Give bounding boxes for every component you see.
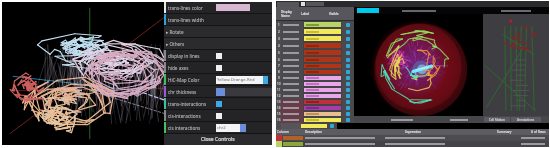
staticText: 6 xyxy=(278,58,280,62)
button[interactable]: trans-interactions xyxy=(164,98,272,109)
staticText: 15 xyxy=(277,112,281,116)
staticText: Cell Motion xyxy=(489,118,505,122)
button[interactable]: 2 xyxy=(276,28,354,35)
button[interactable]: 3 xyxy=(276,35,354,42)
staticText: Display Name xyxy=(281,10,301,18)
staticText: Yellow-Orange-Red xyxy=(217,77,263,83)
button[interactable]: display in lines xyxy=(164,50,272,61)
button[interactable]: 8 xyxy=(276,69,354,75)
button[interactable]: ▸ Rotate xyxy=(164,26,272,37)
staticText: ▸ Rotate xyxy=(166,29,184,35)
staticText: Summary xyxy=(497,130,512,134)
staticText: Label xyxy=(301,12,329,16)
button[interactable]: 14 xyxy=(276,105,354,111)
button[interactable]: 11 xyxy=(276,87,354,93)
staticText: trans-lines width xyxy=(168,17,214,23)
button[interactable]: Close Controls xyxy=(164,134,272,145)
button[interactable]: hide axes xyxy=(164,62,272,73)
button[interactable]: trans-lines color xyxy=(164,2,272,13)
staticText: 1 xyxy=(278,23,280,27)
button[interactable]: Toggle visibility xyxy=(346,64,350,68)
button[interactable]: Toggle visibility xyxy=(346,100,350,104)
button[interactable]: 10 xyxy=(276,81,354,87)
button[interactable]: Toggle visibility xyxy=(346,118,350,122)
staticText: Annotations xyxy=(517,118,535,122)
staticText: Column xyxy=(277,130,289,134)
button[interactable]: 15 xyxy=(276,111,354,117)
button[interactable]: Toggle visibility xyxy=(346,112,350,116)
staticText: 10 xyxy=(277,82,281,86)
button[interactable]: 5 xyxy=(276,49,354,56)
button[interactable]: Toggle visibility xyxy=(346,82,350,86)
staticText: trans-interactions xyxy=(168,101,214,107)
staticText: 2 xyxy=(278,30,280,34)
button[interactable]: Toggle visibility xyxy=(346,23,350,27)
staticText: trans-lines color xyxy=(168,5,214,11)
staticText: 4 xyxy=(278,44,280,48)
staticText: 9 xyxy=(278,76,280,80)
button[interactable]: 7 xyxy=(276,63,354,69)
button[interactable]: Toggle visibility xyxy=(346,58,350,62)
button[interactable]: cis interactions xyxy=(164,122,272,133)
button[interactable]: Toggle visibility xyxy=(346,37,350,41)
button[interactable]: 6 xyxy=(276,56,354,63)
staticText: Description xyxy=(305,130,323,134)
button[interactable]: Toggle visibility xyxy=(346,88,350,92)
staticText: 11 xyxy=(277,88,281,92)
staticText: chr thickness xyxy=(168,89,214,95)
staticText: 12 xyxy=(277,94,281,98)
staticText: chr2 xyxy=(217,125,240,131)
button[interactable]: 9 xyxy=(276,75,354,81)
button[interactable] xyxy=(276,141,549,147)
button[interactable]: Toggle visibility xyxy=(346,106,350,110)
button[interactable]: Toggle visibility xyxy=(346,76,350,80)
staticText: HiC-Map Color xyxy=(168,77,214,83)
button[interactable]: Cell Motion xyxy=(484,117,510,122)
staticText: 14 xyxy=(277,106,281,110)
button[interactable]: ▸ Others xyxy=(164,38,272,49)
button[interactable]: Toggle xyxy=(330,124,334,128)
button[interactable]: Toggle visibility xyxy=(346,70,350,74)
staticText: cis-interactions xyxy=(168,113,214,119)
staticText: 3 xyxy=(278,37,280,41)
button[interactable]: cis-interactions xyxy=(164,110,272,121)
staticText: Visible xyxy=(329,12,339,16)
staticText: hide axes xyxy=(168,65,214,71)
button[interactable]: 16 xyxy=(276,117,354,123)
staticText: ▸ Others xyxy=(166,41,185,47)
staticText: Expression xyxy=(405,130,422,134)
button[interactable] xyxy=(276,135,549,141)
button[interactable]: Toggle visibility xyxy=(346,94,350,98)
button[interactable]: 12 xyxy=(276,93,354,99)
staticText: display in lines xyxy=(168,53,214,59)
button[interactable]: 4 xyxy=(276,42,354,49)
button[interactable]: Toggle visibility xyxy=(346,30,350,34)
button[interactable]: chr thickness xyxy=(164,86,272,97)
staticText: 7 xyxy=(278,64,280,68)
staticText: cis interactions xyxy=(168,125,214,131)
button[interactable]: Toggle visibility xyxy=(346,44,350,48)
button[interactable]: HiC-Map Color xyxy=(164,74,272,85)
staticText: # of Rows xyxy=(531,130,546,134)
button[interactable]: Toggle visibility xyxy=(346,51,350,55)
button[interactable]: 13 xyxy=(276,99,354,105)
button[interactable]: Annotations xyxy=(511,117,541,122)
button[interactable]: trans-lines width xyxy=(164,14,272,25)
staticText: 16 xyxy=(277,118,281,122)
staticText: 5 xyxy=(278,51,280,55)
button[interactable]: 1 xyxy=(276,21,354,28)
staticText: 13 xyxy=(277,100,281,104)
staticText: Close Controls xyxy=(201,136,235,143)
staticText: 8 xyxy=(278,70,280,74)
